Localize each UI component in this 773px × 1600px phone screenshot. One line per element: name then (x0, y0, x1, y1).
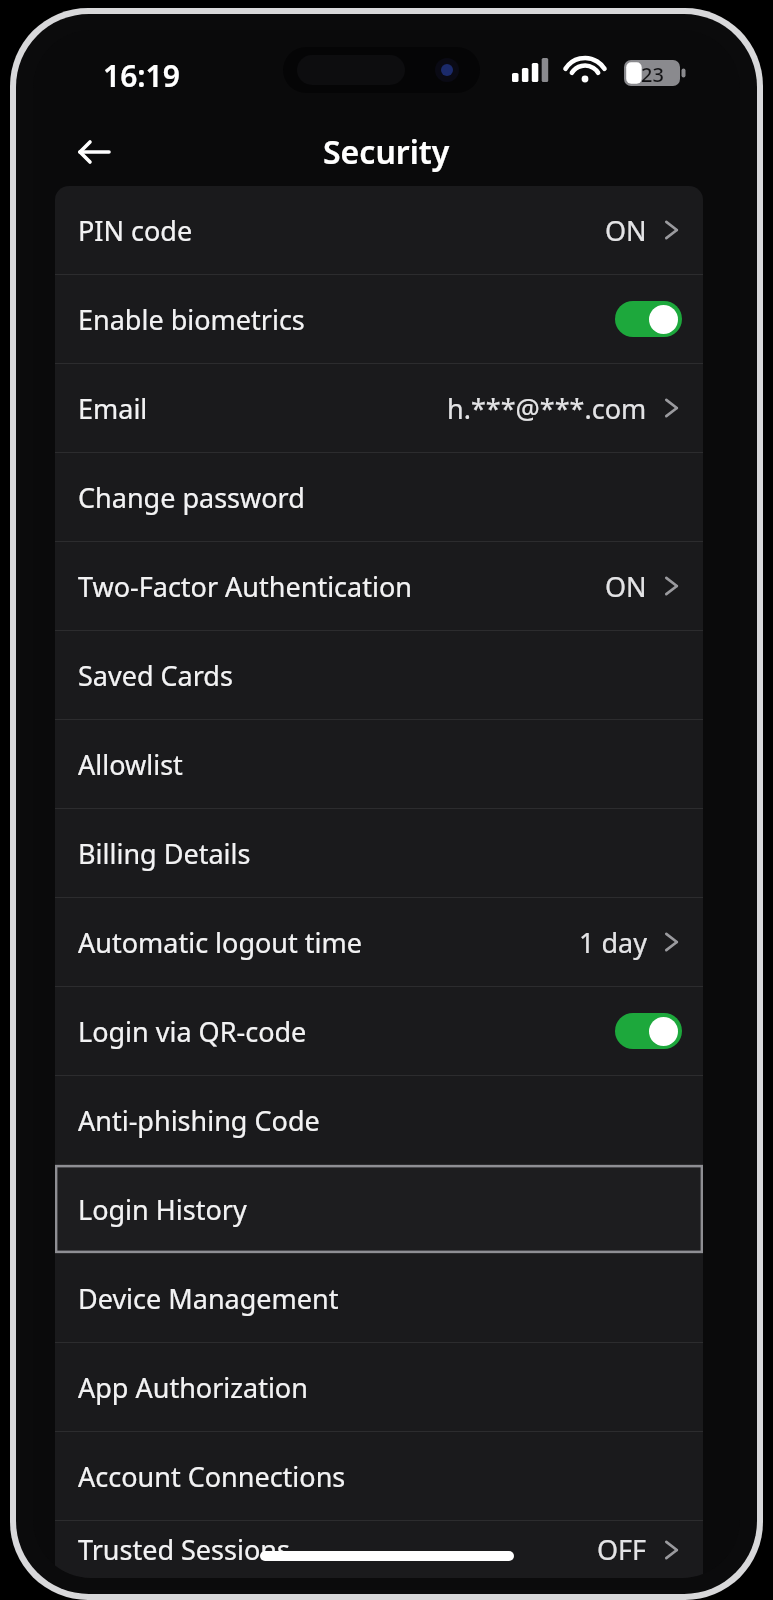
button[interactable]: Trusted Sessions (55, 1521, 703, 1578)
staticText: Saved Cards (78, 657, 233, 694)
button[interactable]: Anti-phishing Code (55, 1076, 703, 1164)
button[interactable]: App Authorization (55, 1343, 703, 1431)
staticText: Account Connections (78, 1458, 346, 1495)
button[interactable]: Login via QR-code (55, 987, 703, 1075)
staticText: 16:19 (103, 55, 180, 96)
staticText: ON (605, 568, 647, 605)
button[interactable]: Device Management (55, 1254, 703, 1342)
button[interactable]: Saved Cards (55, 631, 703, 719)
button[interactable]: Toggle Enable biometrics (615, 301, 682, 337)
button[interactable]: Allowlist (55, 720, 703, 808)
button[interactable]: Billing Details (55, 809, 703, 897)
staticText: Login via QR-code (78, 1013, 307, 1050)
button[interactable]: PIN code (55, 186, 703, 274)
staticText: Change password (78, 479, 305, 516)
button[interactable]: Change password (55, 453, 703, 541)
button[interactable]: Enable biometrics (55, 275, 703, 363)
button[interactable]: Account Connections (55, 1432, 703, 1520)
staticText: Enable biometrics (78, 301, 305, 338)
staticText: 1 day (579, 924, 647, 961)
button[interactable]: Login History (55, 1165, 703, 1253)
staticText: ON (605, 212, 647, 249)
staticText: PIN code (78, 212, 193, 249)
button[interactable]: Email (55, 364, 703, 452)
staticText: 23 (641, 61, 664, 88)
staticText: Automatic logout time (78, 924, 362, 961)
staticText: Billing Details (78, 835, 251, 872)
button[interactable]: Automatic logout time (55, 898, 703, 986)
staticText: Two-Factor Authentication (78, 568, 412, 605)
staticText: Allowlist (78, 746, 183, 783)
staticText: OFF (597, 1531, 647, 1568)
staticText: Device Management (78, 1280, 339, 1317)
staticText: Login History (78, 1191, 247, 1228)
button[interactable]: Toggle Login via QR-code (615, 1013, 682, 1049)
staticText: App Authorization (78, 1369, 308, 1406)
staticText: Anti-phishing Code (78, 1102, 320, 1139)
button[interactable]: Two-Factor Authentication (55, 542, 703, 630)
staticText: h.***@***.com (447, 390, 647, 427)
staticText: Email (78, 390, 148, 427)
staticText: Trusted Sessions (78, 1531, 290, 1568)
button[interactable]: Back (56, 120, 132, 184)
staticText: Security (323, 130, 450, 174)
